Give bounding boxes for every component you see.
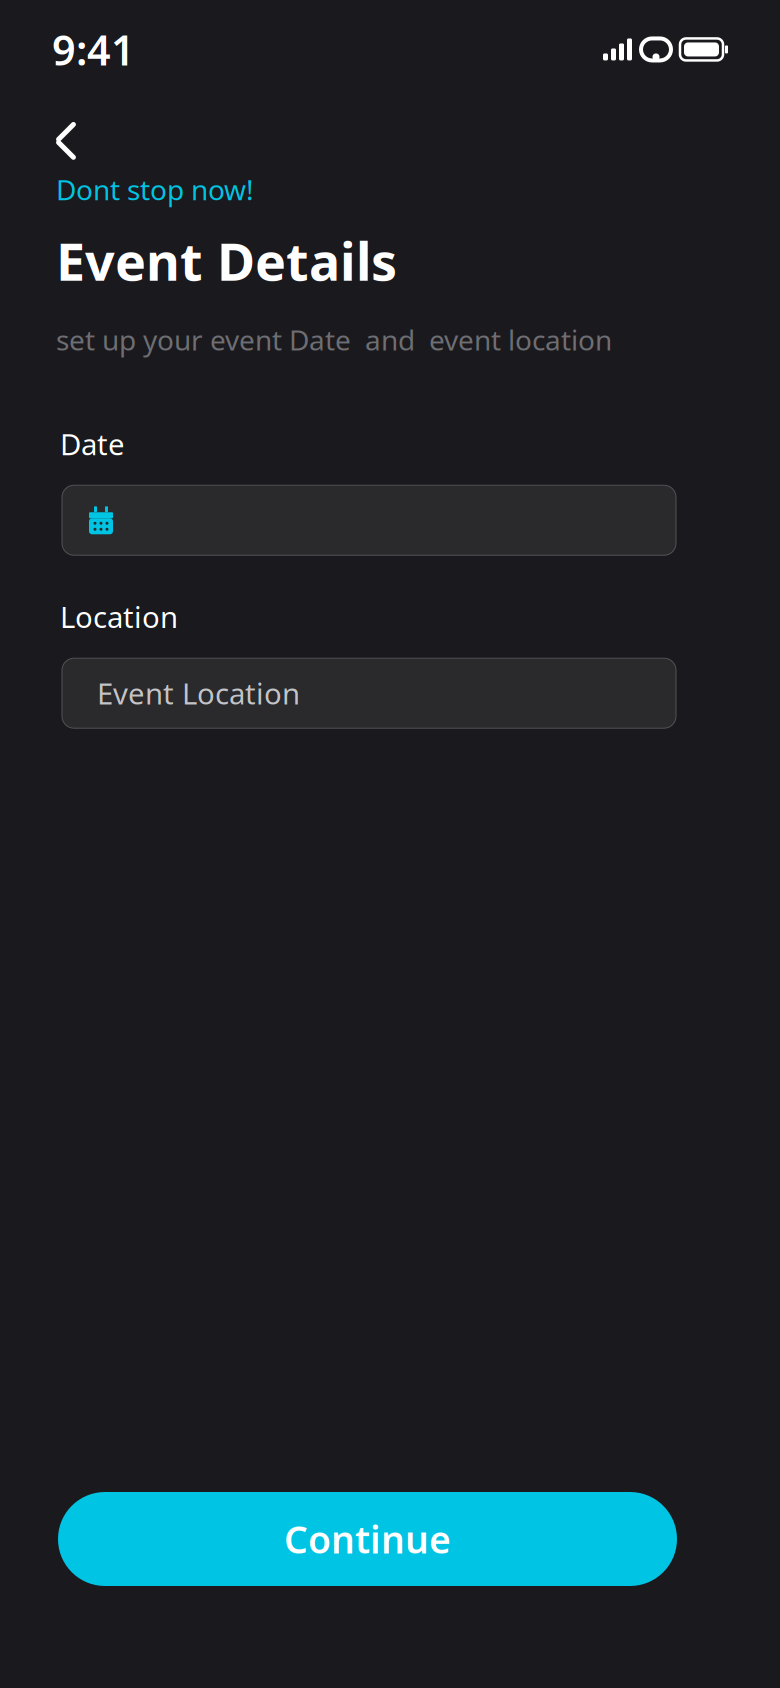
- staticText: Event Location: [97, 674, 300, 713]
- button[interactable]: Select date: [62, 485, 676, 555]
- staticText: Location: [60, 597, 178, 636]
- button[interactable]: Back: [36, 111, 96, 171]
- button[interactable]: Event Location: [62, 658, 676, 728]
- staticText: 9:41: [52, 22, 135, 77]
- staticText: Date: [60, 424, 125, 463]
- staticText: Continue: [284, 1514, 451, 1564]
- button[interactable]: Continue: [58, 1492, 677, 1586]
- staticText: Event Details: [56, 226, 397, 295]
- staticText: Dont stop now!: [56, 171, 254, 208]
- staticText: set up your event Date and event locatio…: [56, 321, 612, 358]
